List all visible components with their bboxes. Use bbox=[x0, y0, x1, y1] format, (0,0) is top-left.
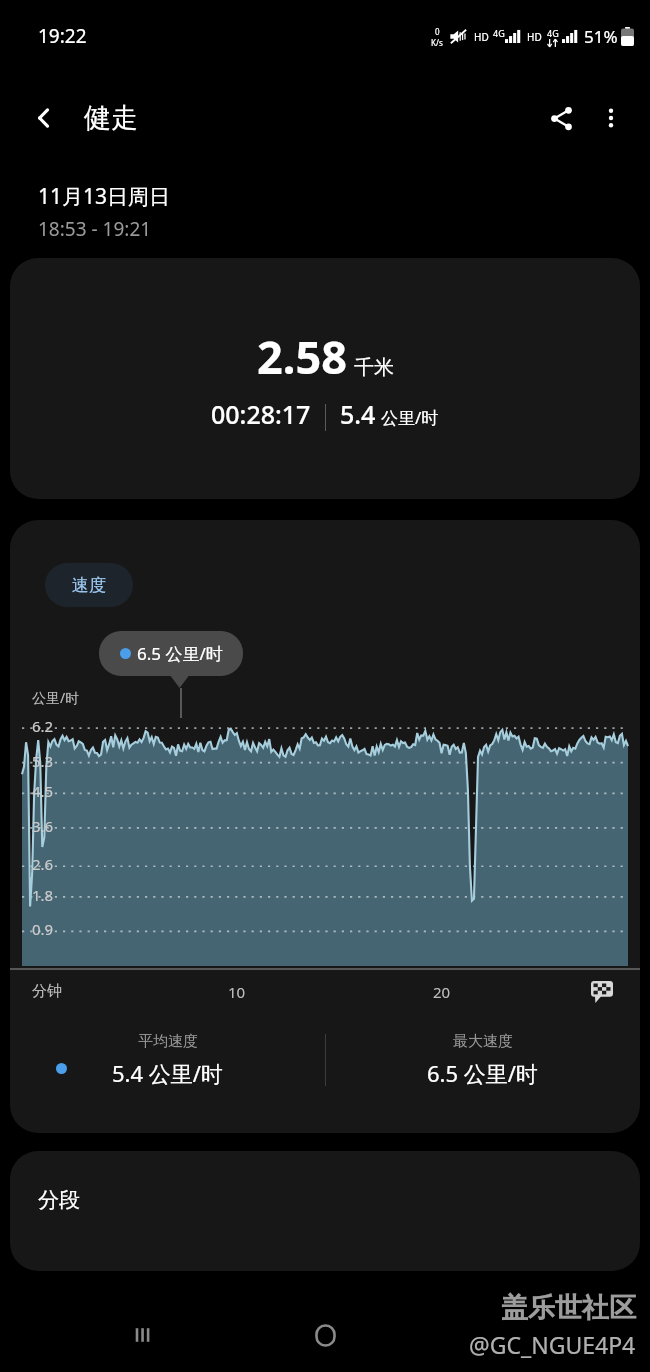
staticText: 公里/时 bbox=[381, 406, 439, 429]
staticText: 4G bbox=[493, 27, 505, 39]
staticText: 公里/时 bbox=[32, 688, 80, 707]
staticText: 18:53 - 19:21 bbox=[38, 216, 152, 242]
staticText: 6.5 公里/时 bbox=[427, 1058, 538, 1088]
staticText: 4.5 bbox=[32, 781, 54, 801]
button[interactable]: Finish marker bbox=[588, 978, 616, 1006]
staticText: 2.58 bbox=[257, 326, 347, 387]
staticText: 0.9 bbox=[32, 919, 54, 939]
staticText: 0 bbox=[435, 26, 440, 37]
staticText: 51% bbox=[584, 25, 618, 48]
staticText: K/s bbox=[431, 37, 443, 48]
staticText: 健走 bbox=[84, 101, 138, 135]
button[interactable]: 分段 bbox=[10, 1151, 640, 1271]
staticText: 盖乐世社区 bbox=[501, 1291, 636, 1325]
staticText: 00:28:17 bbox=[211, 397, 311, 431]
staticText: 速度 bbox=[72, 575, 106, 596]
staticText: 5.3 bbox=[32, 751, 54, 771]
button[interactable]: Share bbox=[536, 93, 586, 143]
staticText: HD bbox=[527, 30, 542, 44]
button[interactable]: 2.58 bbox=[10, 258, 640, 499]
staticText: 5.4 bbox=[340, 397, 376, 431]
staticText: 分段 bbox=[38, 1187, 80, 1213]
staticText: 3.6 bbox=[32, 816, 54, 836]
button[interactable]: More options bbox=[586, 93, 636, 143]
staticText: 6.5 公里/时 bbox=[137, 642, 223, 665]
staticText: 分钟 bbox=[32, 982, 62, 1001]
staticText: 4G bbox=[547, 27, 559, 39]
staticText: 6.2 bbox=[32, 716, 54, 736]
staticText: 平均速度 bbox=[138, 1032, 198, 1051]
staticText: 20 bbox=[433, 982, 451, 1002]
staticText: 10 bbox=[228, 982, 246, 1002]
staticText: 11月13日周日 bbox=[38, 182, 171, 211]
staticText: HD bbox=[474, 30, 489, 44]
staticText: @GC_NGUE4P4 bbox=[469, 1329, 636, 1360]
staticText: 5.4 公里/时 bbox=[112, 1058, 223, 1088]
staticText: 2.6 bbox=[32, 854, 54, 874]
button[interactable]: 速度 bbox=[45, 563, 133, 607]
staticText: 19:22 bbox=[38, 23, 87, 49]
button[interactable]: Home bbox=[301, 1311, 349, 1359]
button[interactable]: Recents bbox=[120, 1311, 168, 1359]
staticText: 千米 bbox=[354, 355, 394, 380]
button[interactable]: Back bbox=[20, 94, 68, 142]
staticText: 最大速度 bbox=[453, 1032, 513, 1051]
staticText: 1.8 bbox=[32, 885, 54, 905]
